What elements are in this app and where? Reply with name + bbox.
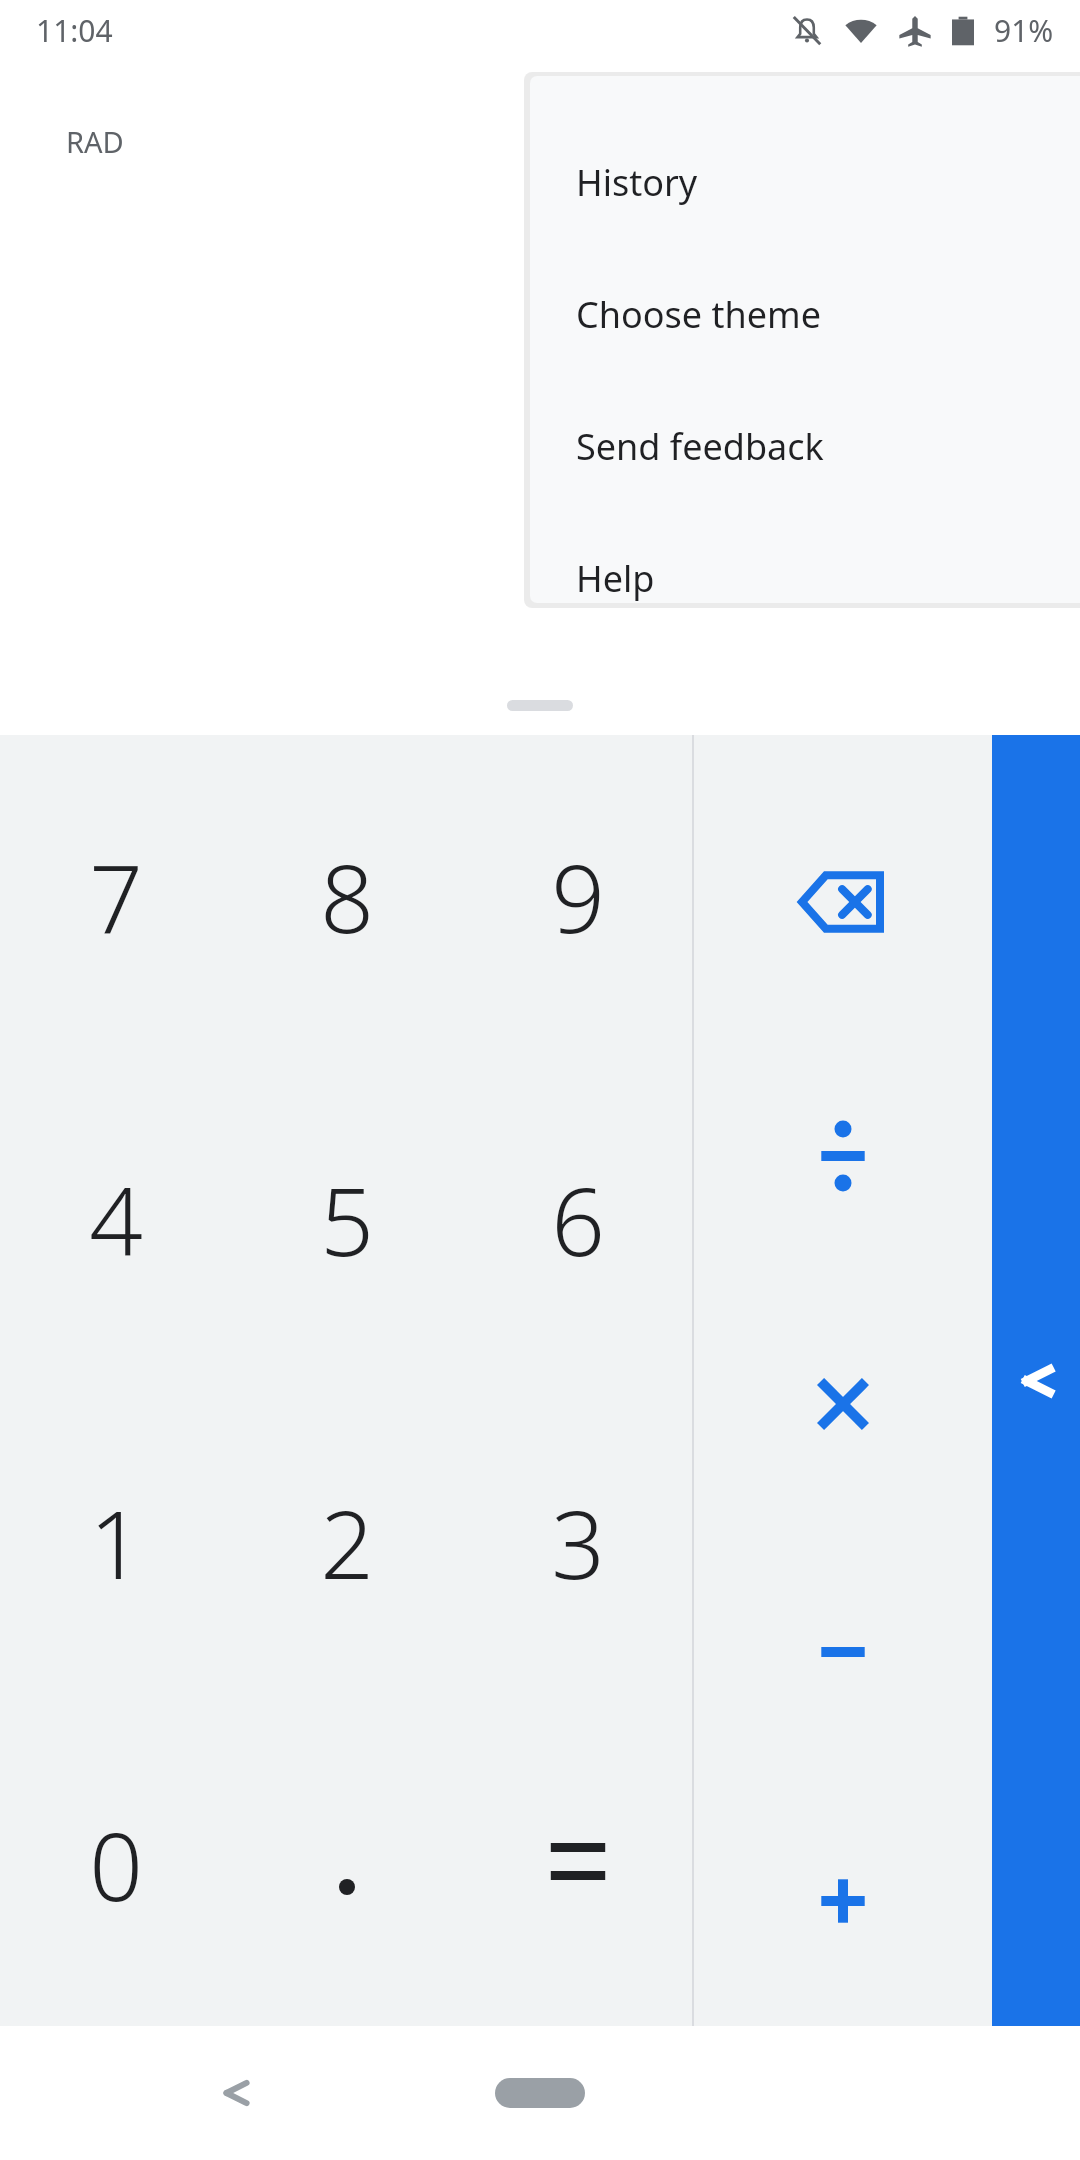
button[interactable]: Help bbox=[530, 512, 1080, 603]
button[interactable]: 3 bbox=[462, 1381, 693, 1704]
button[interactable]: History bbox=[530, 116, 1080, 248]
button[interactable]: Expand advanced pad bbox=[992, 735, 1080, 2026]
staticText: History bbox=[576, 158, 698, 207]
button[interactable]: 0 bbox=[0, 1703, 231, 2026]
staticText: 4 bbox=[89, 1156, 143, 1284]
staticText: 0 bbox=[89, 1801, 143, 1929]
staticText: 6 bbox=[551, 1156, 605, 1284]
button[interactable]: 7 bbox=[0, 735, 231, 1058]
button[interactable]: Choose theme bbox=[530, 248, 1080, 380]
staticText: 9 bbox=[551, 833, 605, 961]
button[interactable]: 9 bbox=[462, 735, 693, 1058]
staticText: 11:04 bbox=[36, 10, 113, 51]
button[interactable] bbox=[462, 1703, 693, 2026]
button[interactable]: Divide bbox=[694, 1032, 992, 1280]
button[interactable]: 6 bbox=[462, 1058, 693, 1381]
button[interactable]: 2 bbox=[231, 1381, 462, 1704]
button[interactable]: Back bbox=[174, 2026, 294, 2160]
staticText: 1 bbox=[89, 1479, 143, 1607]
button[interactable]: Plus bbox=[694, 1776, 992, 2026]
staticText: 5 bbox=[320, 1156, 374, 1284]
staticText: 8 bbox=[320, 833, 374, 961]
button[interactable]: 8 bbox=[231, 735, 462, 1058]
staticText: 2 bbox=[320, 1479, 374, 1607]
staticText: Help bbox=[576, 554, 655, 603]
button[interactable]: Backspace bbox=[694, 735, 992, 1032]
button[interactable]: Minus bbox=[694, 1528, 992, 1776]
button[interactable]: 1 bbox=[0, 1381, 231, 1704]
button[interactable]: RAD bbox=[66, 122, 124, 161]
button[interactable]: 5 bbox=[231, 1058, 462, 1381]
staticText: Choose theme bbox=[576, 290, 821, 339]
button[interactable]: 4 bbox=[0, 1058, 231, 1381]
staticText: 7 bbox=[89, 833, 143, 961]
button[interactable] bbox=[231, 1703, 462, 2026]
staticText: Send feedback bbox=[576, 422, 824, 471]
button[interactable]: Send feedback bbox=[530, 380, 1080, 512]
button[interactable]: Home bbox=[460, 2026, 620, 2160]
button[interactable]: Multiply bbox=[694, 1280, 992, 1528]
staticText: 91% bbox=[994, 10, 1054, 51]
staticText: 3 bbox=[551, 1479, 605, 1607]
